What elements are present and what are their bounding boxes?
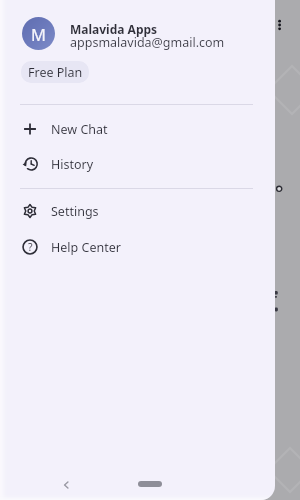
staticText: Malavida Apps xyxy=(70,21,158,37)
button[interactable]: New Chat xyxy=(0,114,275,144)
button[interactable]: ? xyxy=(0,232,275,262)
staticText: Settings xyxy=(51,203,99,220)
button[interactable]: More options xyxy=(273,15,285,35)
button[interactable]: Settings xyxy=(0,196,275,226)
button[interactable]: History xyxy=(0,149,275,179)
staticText: New Chat xyxy=(51,121,108,138)
button[interactable]: Home xyxy=(138,481,162,487)
staticText: ? xyxy=(28,240,33,254)
staticText: M xyxy=(31,23,46,45)
button[interactable]: Free Plan xyxy=(21,61,89,83)
button[interactable]: Back xyxy=(57,476,75,494)
staticText: Help Center xyxy=(51,239,121,256)
staticText: appsmalavida@gmail.com xyxy=(70,34,225,51)
staticText: History xyxy=(51,156,94,173)
staticText: Free Plan xyxy=(28,64,83,81)
